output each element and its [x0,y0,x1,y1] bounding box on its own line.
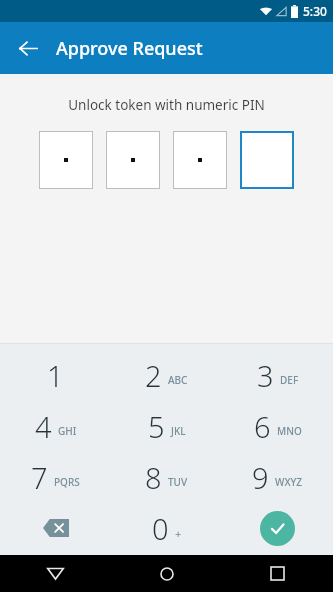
staticText: + [175,526,182,541]
staticText: PQRS [54,475,80,489]
staticText: Approve Request [56,36,203,61]
staticText: 8 [145,458,162,497]
button[interactable]: Confirm [222,503,333,553]
staticText: 4 [35,407,52,446]
button[interactable]: PIN digit 2 [106,131,160,189]
button[interactable]: Home [111,555,222,592]
staticText: 1 [47,356,64,395]
button[interactable]: 6 [222,401,333,452]
staticText: WXYZ [275,475,303,489]
button[interactable]: 3 [222,350,333,401]
button[interactable]: 7 [0,452,111,503]
button[interactable]: 5 [111,401,222,452]
staticText: DEF [280,373,299,387]
button[interactable]: 0 [111,503,222,553]
staticText: 5 [148,407,165,446]
button[interactable]: Recent apps [222,555,333,592]
staticText: Unlock token with numeric PIN [68,96,265,114]
staticText: MNO [277,424,302,438]
button[interactable]: PIN digit 1 [39,131,93,189]
staticText: 2 [145,356,162,395]
staticText: 0 [152,509,169,548]
staticText: ABC [168,373,188,387]
button[interactable]: Back [10,30,46,66]
button[interactable]: Backspace [0,503,111,553]
staticText: 6 [254,407,271,446]
staticText: JKL [171,424,186,438]
button[interactable]: Back [0,555,111,592]
staticText: GHI [58,424,77,438]
button[interactable]: 1 [0,350,111,401]
staticText: 5:30 [303,3,327,19]
staticText: 9 [252,458,269,497]
button[interactable]: 2 [111,350,222,401]
button[interactable]: PIN digit 3 [173,131,227,189]
button[interactable]: 4 [0,401,111,452]
staticText: 3 [257,356,274,395]
button[interactable]: PIN digit 4 [240,131,294,189]
button[interactable]: 9 [222,452,333,503]
staticText: 7 [31,458,48,497]
button[interactable]: 8 [111,452,222,503]
staticText: TUV [168,475,188,489]
